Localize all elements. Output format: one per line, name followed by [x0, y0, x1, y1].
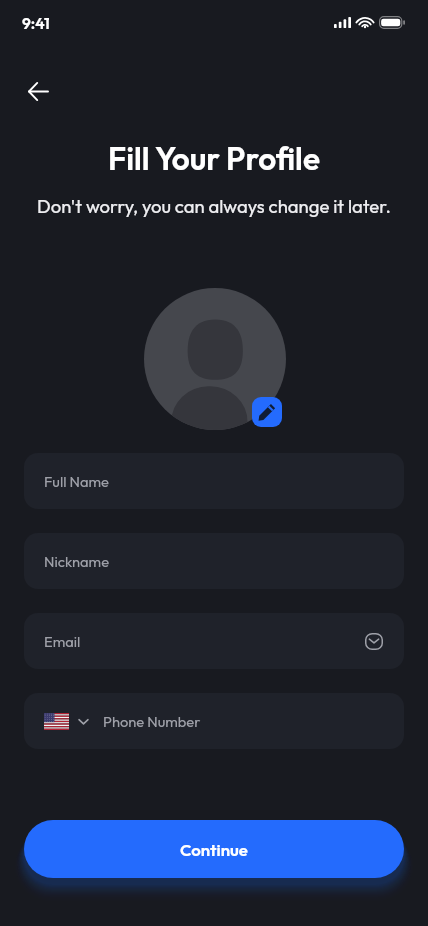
- staticText: Don't worry, you can always change it la…: [0, 194, 428, 217]
- button[interactable]: Profile photo: [144, 288, 286, 430]
- staticText: 9:41: [22, 13, 50, 33]
- staticText: Email: [44, 632, 365, 651]
- button[interactable]: Email: [24, 613, 404, 669]
- button[interactable]: Phone Number: [24, 693, 404, 749]
- button[interactable]: Full Name: [24, 453, 404, 509]
- staticText: Full Name: [44, 472, 383, 491]
- button[interactable]: Nickname: [24, 533, 404, 589]
- button[interactable]: Edit photo: [252, 397, 282, 427]
- staticText: Continue: [180, 839, 248, 860]
- staticText: Fill Your Profile: [0, 138, 428, 178]
- button[interactable]: Back: [22, 75, 54, 107]
- staticText: Phone Number: [103, 712, 383, 731]
- staticText: Nickname: [44, 552, 383, 571]
- button[interactable]: Continue: [24, 820, 404, 878]
